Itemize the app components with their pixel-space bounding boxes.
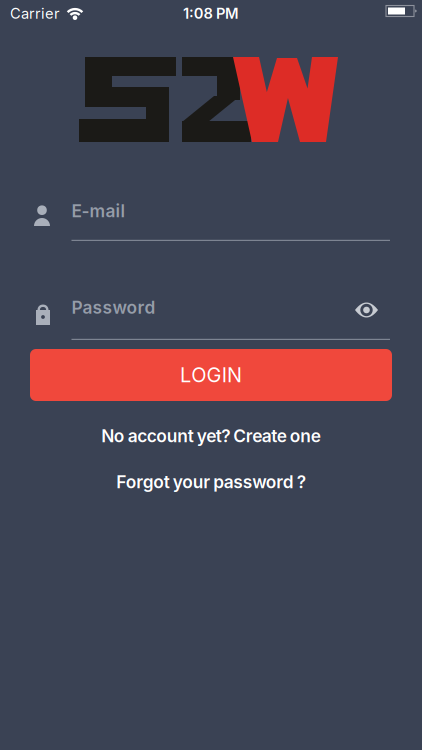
staticText: Password — [71, 297, 155, 318]
staticText: E-mail — [71, 201, 125, 221]
button[interactable]: Password — [30, 290, 390, 340]
button[interactable]: No account yet? Create one — [101, 426, 321, 446]
staticText: 1:08 PM — [183, 5, 239, 22]
staticText: Carrier — [10, 5, 60, 22]
button[interactable]: Forgot your password ? — [116, 472, 306, 492]
button[interactable]: E-mail — [30, 191, 390, 241]
staticText: Forgot your password ? — [116, 472, 306, 492]
button[interactable] — [351, 299, 381, 321]
button[interactable]: LOGIN — [30, 349, 392, 401]
staticText: LOGIN — [180, 363, 242, 387]
staticText: No account yet? Create one — [101, 426, 321, 446]
